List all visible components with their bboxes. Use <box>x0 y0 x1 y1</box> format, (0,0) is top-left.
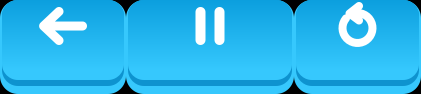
button[interactable]: Back <box>0 0 126 94</box>
button[interactable]: Pause <box>126 0 294 94</box>
button[interactable]: Replay <box>294 0 421 94</box>
